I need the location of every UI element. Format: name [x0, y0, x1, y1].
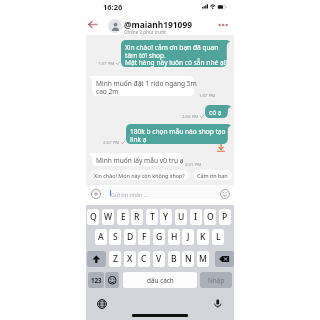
button[interactable]: D [124, 229, 136, 245]
staticText: W [104, 211, 113, 223]
staticText: dấu cách [147, 276, 174, 285]
button[interactable]: I [190, 209, 202, 225]
button[interactable]: Y [160, 209, 172, 225]
button[interactable]: Add attachment [90, 188, 101, 199]
button[interactable]: F [138, 229, 150, 245]
button[interactable]: V [153, 251, 165, 267]
staticText: P [222, 211, 228, 223]
button[interactable]: W [102, 209, 114, 225]
button[interactable]: Profile picture [108, 19, 122, 33]
button[interactable]: X [124, 251, 136, 267]
staticText: có ạ [209, 108, 222, 117]
staticText: Y [163, 211, 169, 223]
staticText: Gửi tin nhắn ... [111, 191, 149, 198]
staticText: 3:31 PM [185, 161, 202, 167]
staticText: D [127, 231, 134, 243]
staticText: 2:56 PM [182, 113, 199, 119]
button[interactable] [215, 251, 234, 267]
button[interactable]: Nhập [200, 272, 232, 288]
staticText: Q [90, 211, 97, 223]
button[interactable]: 123 [88, 272, 104, 288]
staticText: Mình muốn đặt 1 rido ngang 5m cao 2m [96, 79, 197, 96]
button[interactable]: Q [87, 209, 99, 225]
button[interactable]: Voice input [211, 297, 225, 311]
staticText: E [121, 211, 126, 223]
staticText: 180k b chọn mẫu nào shop tạo link ạ [130, 127, 226, 144]
staticText: O [207, 211, 214, 223]
staticText: 2:57 PM [103, 139, 120, 145]
staticText: T [150, 211, 155, 223]
staticText: R [134, 211, 140, 223]
button[interactable]: Emoji [219, 188, 230, 199]
staticText: Mình muốn lấy mẫu vũ trụ ạ [96, 156, 184, 165]
staticText: J [187, 231, 190, 243]
button[interactable]: R [131, 209, 143, 225]
button[interactable]: C [138, 251, 150, 267]
button[interactable]: O [204, 209, 216, 225]
button[interactable]: J [182, 229, 194, 245]
button[interactable]: G [153, 229, 165, 245]
staticText: Z [113, 253, 118, 265]
staticText: C [141, 253, 147, 265]
button[interactable]: H [168, 229, 180, 245]
staticText: G [156, 231, 163, 243]
staticText: 123 [91, 276, 102, 284]
button[interactable]: More options [216, 19, 230, 31]
staticText: B [171, 253, 177, 265]
staticText: S [113, 231, 118, 243]
button[interactable]: L [212, 229, 224, 245]
button[interactable]: 180k b chọn mẫu nào shop tạo link ạ [126, 124, 231, 144]
staticText: Nhập [208, 276, 225, 285]
staticText: H [171, 231, 178, 243]
staticText: I [194, 211, 198, 223]
staticText: Xin chào! Món này còn không shop? [94, 172, 185, 179]
staticText: 1:37 PM [98, 60, 115, 66]
button[interactable]: Change keyboard language [95, 297, 109, 311]
button[interactable]: A [95, 229, 107, 245]
button[interactable]: S [109, 229, 121, 245]
button[interactable]: M [197, 251, 209, 267]
button[interactable]: N [182, 251, 194, 267]
staticText: A [98, 231, 104, 243]
button[interactable]: T [146, 209, 158, 225]
button[interactable] [106, 187, 230, 199]
staticText: L [216, 231, 221, 243]
button[interactable]: P [219, 209, 231, 225]
button[interactable]: B [168, 251, 180, 267]
staticText: M [199, 253, 207, 265]
button[interactable]: U [175, 209, 187, 225]
staticText: 16:26 [103, 2, 123, 12]
staticText: K [200, 231, 206, 243]
button[interactable]: Mình muốn đặt 1 rido ngang 5m cao 2m [89, 76, 194, 96]
button[interactable]: Mình muốn lấy mẫu vũ trụ ạ [89, 153, 183, 166]
staticText: @maianh191099 [124, 19, 192, 30]
button[interactable] [87, 251, 106, 267]
button[interactable]: E [117, 209, 129, 225]
button[interactable]: Z [109, 251, 121, 267]
staticText: Online 2 phút trước [124, 29, 167, 35]
staticText: X [127, 253, 133, 265]
staticText: N [185, 253, 192, 265]
staticText: 1:37 PM [199, 92, 216, 98]
staticText: Xin chào! cảm ơn bạn đã quan tâm tới sho… [125, 43, 228, 67]
button[interactable]: Back [88, 21, 97, 28]
button[interactable]: Xin chào! cảm ơn bạn đã quan tâm tới sho… [121, 40, 230, 67]
button[interactable]: dấu cách [123, 272, 197, 288]
staticText: Cảm ơn bạn [197, 172, 228, 179]
staticText: V [156, 253, 162, 265]
staticText: F [142, 231, 147, 243]
button[interactable]: K [197, 229, 209, 245]
button[interactable]: Cảm ơn bạn [193, 170, 232, 180]
staticText: U [178, 211, 185, 223]
button[interactable]: có ạ [205, 105, 231, 118]
button[interactable]: Xin chào! Món này còn không shop? [90, 170, 189, 180]
button[interactable] [105, 272, 119, 288]
